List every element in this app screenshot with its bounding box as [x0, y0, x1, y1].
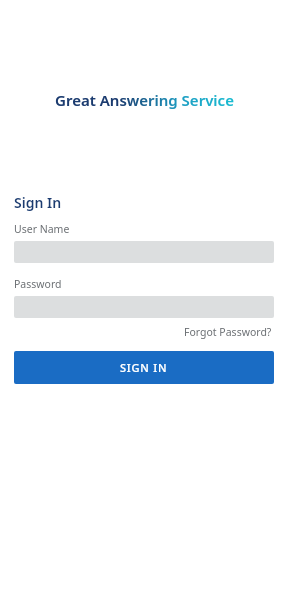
staticText: User Name — [14, 222, 70, 236]
button[interactable]: Sign In — [14, 351, 274, 384]
button[interactable]: Forgot Password? — [182, 323, 274, 341]
staticText: Forgot Password? — [184, 325, 272, 339]
staticText: Sign In — [14, 193, 62, 212]
staticText: Great Answering Service — [55, 90, 234, 110]
staticText: Password — [14, 277, 62, 291]
staticText: SIGN IN — [120, 360, 168, 375]
